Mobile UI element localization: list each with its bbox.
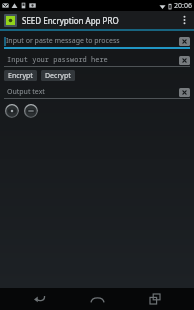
- button[interactable]: Share output: [23, 103, 38, 118]
- button[interactable]: Output text: [4, 86, 190, 98]
- button[interactable]: Copy output: [4, 103, 19, 118]
- staticText: SEED Encryption App PRO: [22, 15, 178, 26]
- staticText: 20:06: [174, 1, 192, 11]
- button[interactable]: Encrypt: [4, 70, 37, 81]
- button[interactable]: More options: [178, 11, 190, 29]
- button[interactable]: Clear text: [179, 56, 190, 65]
- button[interactable]: Input or paste message to process: [4, 35, 190, 47]
- staticText: Output text: [7, 87, 176, 97]
- staticText: Input your password here: [7, 55, 176, 65]
- button[interactable]: Back: [20, 288, 58, 310]
- staticText: Input or paste message to process: [6, 36, 176, 46]
- button[interactable]: Input your password here: [4, 54, 190, 66]
- button[interactable]: Clear text: [179, 37, 190, 46]
- button[interactable]: Decrypt: [41, 70, 75, 81]
- staticText: Encrypt: [8, 71, 33, 81]
- staticText: Decrypt: [45, 71, 71, 81]
- button[interactable]: Recent apps: [136, 288, 174, 310]
- button[interactable]: Home: [78, 288, 116, 310]
- button[interactable]: Clear text: [179, 88, 190, 97]
- button[interactable]: App icon: [4, 14, 17, 27]
